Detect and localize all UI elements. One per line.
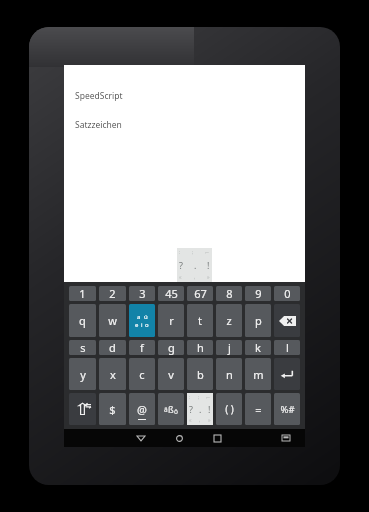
- button[interactable]: v: [158, 358, 184, 390]
- staticText: ä: [164, 405, 168, 414]
- button[interactable]: f: [129, 340, 155, 355]
- staticText: s: [80, 340, 86, 355]
- staticText: »: [208, 417, 211, 424]
- staticText: 1: [79, 286, 86, 301]
- staticText: ⌐: [205, 249, 210, 255]
- staticText: y: [80, 367, 86, 382]
- staticText: Satzzeichen: [75, 119, 122, 131]
- button[interactable]: y: [69, 358, 96, 390]
- staticText: 45: [165, 286, 178, 301]
- staticText: p: [255, 313, 262, 328]
- button[interactable]: w: [99, 304, 126, 337]
- staticText: a: [137, 313, 141, 321]
- staticText: ;: [192, 249, 194, 256]
- button[interactable]: z: [216, 304, 242, 337]
- staticText: ß: [168, 403, 174, 415]
- staticText: w: [108, 313, 117, 328]
- button[interactable]: s: [69, 340, 96, 355]
- staticText: ;: [198, 394, 200, 401]
- staticText: 8: [226, 286, 233, 301]
- button[interactable]: 3: [129, 286, 155, 301]
- staticText: z: [226, 313, 232, 328]
- staticText: :: [189, 394, 191, 401]
- button[interactable]: t: [187, 304, 213, 337]
- staticText: f: [140, 340, 144, 355]
- button[interactable]: 45: [158, 286, 184, 301]
- staticText: ö: [174, 407, 178, 416]
- button[interactable]: n: [216, 358, 242, 390]
- staticText: n: [226, 367, 233, 382]
- button[interactable]: c: [129, 358, 155, 390]
- button[interactable]: $: [99, 393, 126, 425]
- staticText: l: [286, 340, 289, 355]
- staticText: ( ): [225, 402, 234, 416]
- staticText: d: [109, 340, 116, 355]
- staticText: ?: [179, 259, 183, 271]
- staticText: «: [179, 274, 182, 281]
- staticText: e: [135, 321, 139, 329]
- button[interactable]: q: [69, 304, 96, 337]
- button[interactable]: Recents: [198, 429, 236, 447]
- staticText: ü: [144, 313, 148, 321]
- button[interactable]: r: [158, 304, 184, 337]
- staticText: o: [145, 321, 149, 329]
- staticText: v: [168, 367, 174, 382]
- button[interactable]: Back: [122, 429, 160, 447]
- staticText: :: [179, 249, 181, 256]
- staticText: !: [207, 259, 210, 271]
- button[interactable]: ( ): [216, 393, 242, 425]
- button[interactable]: Home: [160, 429, 198, 447]
- button[interactable]: 9: [245, 286, 271, 301]
- staticText: .: [199, 403, 202, 415]
- button[interactable]: @: [129, 393, 155, 425]
- staticText: !: [208, 403, 211, 415]
- staticText: »: [207, 274, 210, 281]
- button[interactable]: p: [245, 304, 271, 337]
- staticText: .: [194, 259, 197, 271]
- staticText: g: [168, 340, 175, 355]
- staticText: 2: [109, 286, 116, 301]
- staticText: ,: [194, 274, 196, 281]
- staticText: k: [255, 340, 261, 355]
- button[interactable]: Backspace: [274, 304, 300, 337]
- button[interactable]: %#: [274, 393, 300, 425]
- button[interactable]: b: [187, 358, 213, 390]
- button[interactable]: 0: [274, 286, 300, 301]
- button[interactable]: Shift: [69, 393, 96, 425]
- staticText: SpeedScript: [75, 90, 123, 102]
- button[interactable]: 67: [187, 286, 213, 301]
- button[interactable]: Enter: [274, 358, 300, 390]
- staticText: i: [141, 321, 143, 329]
- button[interactable]: =: [245, 393, 271, 425]
- button[interactable]: 2: [99, 286, 126, 301]
- button[interactable]: g: [158, 340, 184, 355]
- button[interactable]: h: [187, 340, 213, 355]
- button[interactable]: l: [274, 340, 300, 355]
- button[interactable]: 8: [216, 286, 242, 301]
- staticText: 3: [139, 286, 146, 301]
- staticText: ?: [189, 403, 193, 415]
- button[interactable]: Umlauts: [158, 393, 184, 425]
- staticText: 67: [194, 286, 207, 301]
- button[interactable]: Keyboard: [270, 429, 301, 447]
- staticText: =: [255, 402, 262, 417]
- button[interactable]: d: [99, 340, 126, 355]
- staticText: h: [197, 340, 204, 355]
- staticText: t: [198, 313, 202, 328]
- staticText: 0: [284, 286, 291, 301]
- button[interactable]: Vowels: [129, 304, 155, 337]
- button[interactable]: Punctuation: [177, 248, 212, 282]
- staticText: r: [169, 313, 174, 328]
- staticText: %#: [280, 403, 295, 416]
- staticText: 9: [255, 286, 262, 301]
- button[interactable]: Punctuation: [187, 393, 213, 425]
- staticText: «: [189, 417, 192, 424]
- button[interactable]: x: [99, 358, 126, 390]
- staticText: $: [109, 402, 116, 417]
- button[interactable]: j: [216, 340, 242, 355]
- staticText: @: [137, 402, 147, 417]
- button[interactable]: 1: [69, 286, 96, 301]
- button[interactable]: m: [245, 358, 271, 390]
- staticText: b: [197, 367, 204, 382]
- button[interactable]: k: [245, 340, 271, 355]
